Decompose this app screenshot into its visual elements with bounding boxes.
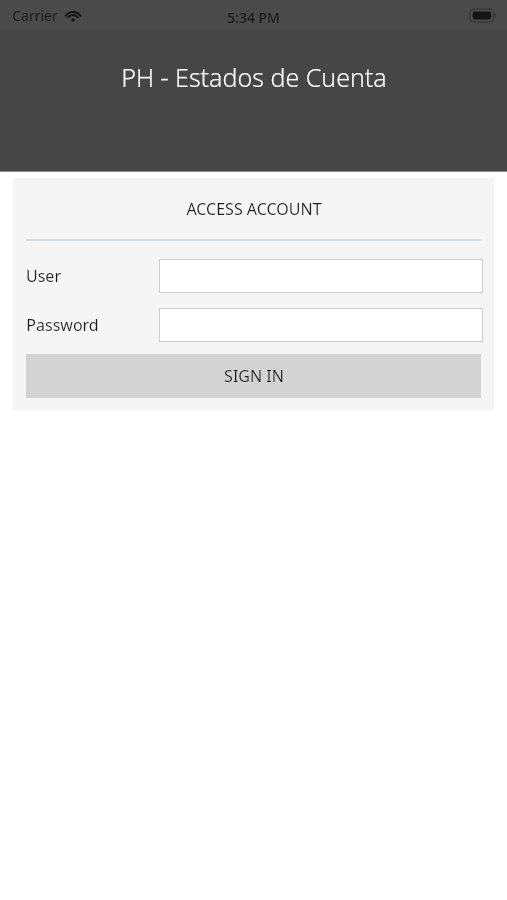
staticText: User xyxy=(26,265,61,287)
staticText: ACCESS ACCOUNT xyxy=(186,198,322,220)
staticText: Carrier xyxy=(12,6,58,25)
staticText: SIGN IN xyxy=(224,365,284,387)
staticText: Password xyxy=(26,314,99,336)
staticText: 5:34 PM xyxy=(227,8,280,27)
staticText: PH - Estados de Cuenta xyxy=(121,60,387,94)
button[interactable]: User xyxy=(159,259,483,293)
button[interactable]: SIGN IN xyxy=(26,354,481,398)
button[interactable]: Password xyxy=(159,308,483,342)
